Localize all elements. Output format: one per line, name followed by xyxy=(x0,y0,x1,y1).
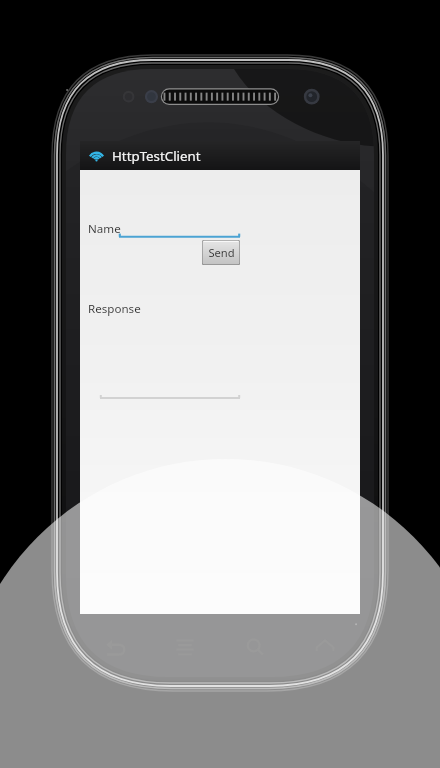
other: HttpTestClient app icon xyxy=(88,147,105,164)
staticText: Response xyxy=(88,301,141,317)
button[interactable]: HttpTestClient app icon xyxy=(80,141,360,170)
button[interactable]: Response output field xyxy=(100,392,240,400)
staticText: Name xyxy=(88,221,121,237)
button[interactable]: Send xyxy=(202,240,240,265)
button[interactable]: Name input field xyxy=(119,229,240,239)
staticText: HttpTestClient xyxy=(112,147,201,165)
staticText: Send xyxy=(208,245,235,260)
button[interactable]: Back xyxy=(80,626,150,668)
button[interactable]: Home xyxy=(290,626,360,668)
